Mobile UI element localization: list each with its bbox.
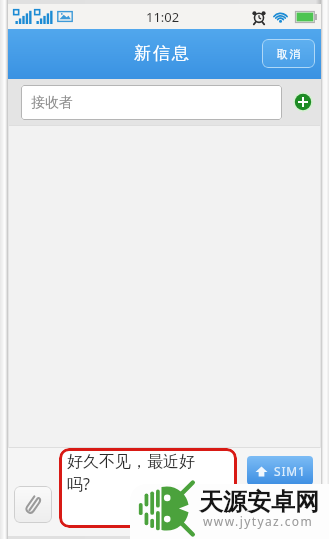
button[interactable]: Add recipient [293,92,313,112]
button[interactable]: SIM1 [247,456,313,485]
staticText: 11:02 [146,8,180,26]
button[interactable]: 接收者 [21,85,282,120]
staticText: 天源安卓网 [199,487,319,517]
staticText: 接收者 [31,94,73,112]
button[interactable]: 好久不见，最近好 吗? [59,448,237,528]
staticText: 取消 [276,47,301,61]
button[interactable]: Attach [14,486,52,523]
staticText: www.jytyaz.com [203,513,314,529]
staticText: SIM1 [274,463,306,479]
button[interactable]: 取消 [262,39,315,68]
staticText: 新信息 [133,43,190,64]
staticText: 好久不见，最近好 吗? [67,452,195,495]
